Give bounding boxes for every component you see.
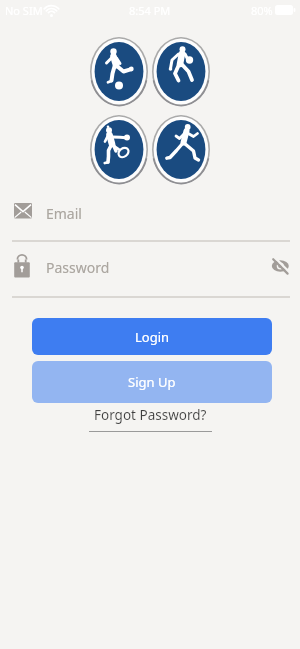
button[interactable]: Sign Up: [32, 361, 272, 403]
staticText: No SIM: [5, 3, 43, 18]
button[interactable]: Password: [0, 252, 300, 298]
button[interactable]: Forgot Password?: [94, 406, 207, 424]
staticText: Email: [46, 204, 82, 223]
staticText: Password: [46, 258, 110, 277]
staticText: Sign Up: [128, 373, 176, 391]
button[interactable]: Email: [0, 196, 300, 242]
staticText: Login: [135, 328, 170, 346]
button[interactable]: Login: [32, 318, 272, 355]
staticText: Forgot Password?: [94, 406, 207, 424]
button[interactable]: [269, 255, 291, 277]
staticText: 8:54 PM: [129, 3, 171, 18]
staticText: 80%: [251, 3, 273, 18]
